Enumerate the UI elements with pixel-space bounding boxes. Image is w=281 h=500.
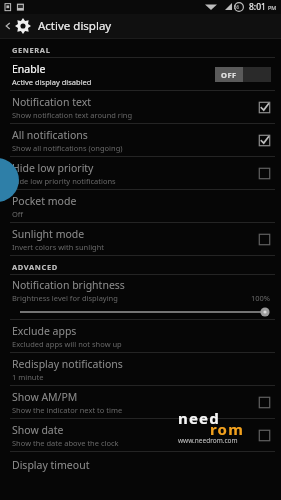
- staticText: rom: [210, 419, 245, 439]
- staticText: 56: [234, 4, 240, 10]
- button[interactable]: Pocket mode: [0, 190, 281, 222]
- staticText: Show AM/PM: [12, 390, 78, 404]
- staticText: Active display disabled: [12, 77, 92, 87]
- button[interactable]: Sunlight mode: [0, 223, 281, 255]
- staticText: Redisplay notifications: [12, 357, 123, 371]
- staticText: GENERAL: [12, 45, 51, 55]
- button[interactable]: Enable: [0, 58, 281, 90]
- button[interactable]: Notification text: [0, 91, 281, 123]
- staticText: Pocket mode: [12, 194, 77, 208]
- staticText: Exclude apps: [12, 324, 77, 338]
- staticText: Show all notifications (ongoing): [12, 143, 123, 153]
- staticText: Display timeout: [12, 458, 90, 472]
- other: Back: [4, 22, 12, 30]
- staticText: Excluded apps will not show up: [12, 339, 122, 349]
- button[interactable]: All notifications: [0, 124, 281, 156]
- staticText: 8:01: [249, 1, 266, 13]
- staticText: Hide low priority: [12, 161, 94, 175]
- button[interactable]: Show AM/PM: [0, 386, 281, 418]
- staticText: Brightness level for displaying: [12, 293, 251, 303]
- staticText: Show date: [12, 423, 64, 437]
- staticText: Show the date above the clock: [12, 438, 119, 448]
- staticText: OFF: [221, 70, 237, 80]
- staticText: Show the indicator next to time: [12, 405, 123, 415]
- staticText: Sunlight mode: [12, 227, 85, 241]
- button[interactable]: Exclude apps: [0, 320, 281, 352]
- staticText: Notification text: [12, 95, 92, 109]
- staticText: need: [178, 408, 220, 428]
- staticText: Show notification text around ring: [12, 110, 133, 120]
- staticText: 1 minute: [12, 372, 44, 382]
- staticText: Enable: [12, 62, 46, 76]
- button[interactable]: Redisplay notifications: [0, 353, 281, 385]
- button[interactable]: Display timeout: [0, 452, 281, 478]
- button[interactable]: Back: [0, 14, 281, 38]
- button[interactable]: Show date: [0, 419, 281, 451]
- button[interactable]: Hide low priority: [0, 157, 281, 189]
- staticText: 100%: [251, 293, 271, 303]
- staticText: Active display: [38, 18, 112, 34]
- staticText: Invert colors with sunlight: [12, 242, 105, 252]
- button[interactable]: Notification brightness: [0, 275, 281, 319]
- staticText: PM: [268, 4, 277, 11]
- staticText: ADVANCED: [12, 262, 58, 272]
- staticText: Notification brightness: [12, 278, 125, 292]
- button[interactable]: Enable toggle, off: [215, 67, 271, 82]
- staticText: Off: [12, 209, 24, 219]
- staticText: All notifications: [12, 128, 88, 142]
- staticText: Hide low priority notifications: [12, 176, 116, 186]
- staticText: www.needrom.com: [178, 436, 238, 445]
